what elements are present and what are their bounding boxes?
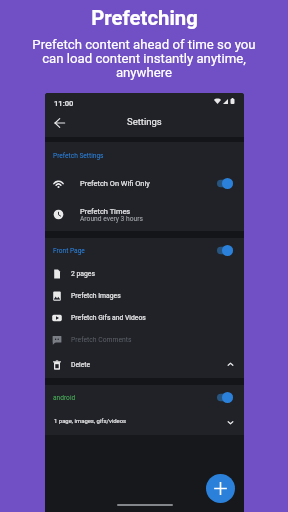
button[interactable]: Prefetch Gifs and Videos [45,307,244,329]
staticText: Prefetch Settings [53,152,104,160]
staticText: 2 pages [71,270,95,278]
staticText: Prefetch Images [71,292,121,300]
staticText: Prefetch content ahead of time so you ca… [29,37,259,80]
staticText: Prefetch Gifs and Videos [71,314,146,322]
staticText: Front Page [53,247,85,255]
staticText: Around every 3 hours [80,215,143,223]
staticText: Prefetching [91,6,198,30]
staticText: Prefetch Times [80,207,131,216]
button[interactable]: Add [206,474,235,503]
staticText: Prefetch Comments [71,336,132,344]
button[interactable]: 1 page, images, gifs/videos [45,410,244,435]
staticText: Delete [71,361,91,369]
button[interactable]: Prefetch Comments [45,329,244,351]
button[interactable]: Prefetch Images [45,285,244,307]
button[interactable]: Toggle Front Page [217,245,233,256]
button[interactable]: Back [45,113,73,133]
button[interactable]: Prefetch On Wifi Only [45,169,244,197]
button[interactable]: Delete [45,351,244,378]
staticText: android [53,394,76,402]
button[interactable]: Toggle android [217,392,233,403]
staticText: Prefetch On Wifi Only [80,179,150,188]
button[interactable]: Prefetch Times [45,197,244,231]
button[interactable]: Toggle Prefetch On Wifi Only [217,178,233,189]
staticText: Settings [127,116,162,127]
staticText: 11:00 [54,99,74,108]
staticText: 1 page, images, gifs/videos [54,417,127,424]
button[interactable]: 2 pages [45,263,244,285]
